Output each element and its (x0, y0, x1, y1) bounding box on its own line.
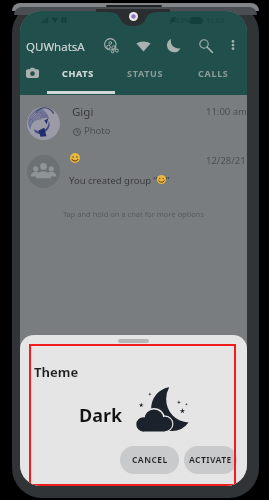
staticText: CANCEL (132, 454, 168, 466)
staticText: Dark (79, 403, 123, 428)
staticText: 83% (176, 16, 190, 26)
staticText: Photo (84, 124, 111, 137)
staticText: STATUS (127, 67, 164, 79)
staticText: CALLS (198, 67, 229, 79)
button[interactable]: More options (221, 33, 245, 57)
staticText: Gigi (72, 104, 94, 120)
staticText: 12/28/21 (206, 154, 246, 167)
button[interactable]: STATUS (111, 62, 179, 84)
button[interactable]: Status (131, 33, 155, 57)
button[interactable]: Mods (99, 33, 123, 57)
staticText: Tap and hold on a chat for more options (20, 209, 247, 219)
staticText: Theme (34, 363, 79, 381)
button[interactable]: Search (193, 33, 217, 57)
staticText: ” (166, 174, 170, 187)
button[interactable]: CANCEL (120, 446, 179, 474)
staticText: ACTIVATE (189, 454, 232, 466)
button[interactable]: CALLS (179, 62, 247, 84)
staticText: CHATS (62, 67, 94, 79)
button[interactable]: Dark mode (162, 33, 186, 57)
staticText: 11:00 am (206, 105, 247, 118)
staticText: 11:03 (206, 16, 224, 26)
button[interactable]: You created group “ (20, 148, 247, 196)
button[interactable]: Camera (20, 62, 44, 84)
button[interactable]: Gigi (20, 100, 247, 148)
button[interactable]: CHATS (44, 62, 111, 84)
staticText: QUWhatsA (26, 39, 85, 55)
button[interactable]: ACTIVATE (184, 446, 237, 474)
staticText: You created group “ (69, 174, 157, 187)
